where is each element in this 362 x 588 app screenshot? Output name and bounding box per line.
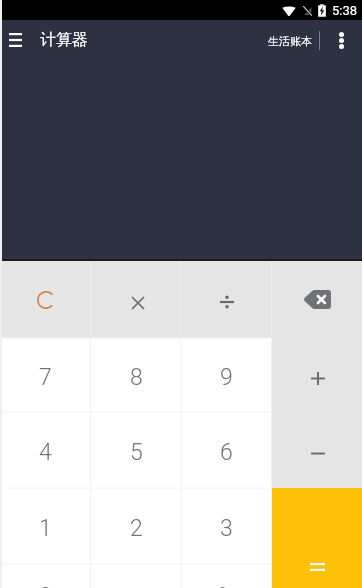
button[interactable]: More options	[321, 20, 362, 60]
staticText: 3	[220, 515, 233, 542]
button[interactable]: 0	[0, 564, 91, 588]
button[interactable]: 7	[0, 338, 91, 412]
button[interactable]: 生活账本	[258, 25, 320, 55]
button[interactable]: Plus	[272, 338, 362, 412]
button[interactable]: Backspace	[272, 261, 362, 338]
staticText: 9	[220, 364, 233, 391]
staticText: 5	[130, 439, 143, 466]
staticText: 计算器	[40, 30, 88, 50]
button[interactable]: 6	[181, 412, 272, 488]
button[interactable]: 1	[0, 488, 91, 564]
staticText: 生活账本	[268, 34, 312, 48]
button[interactable]: 8	[91, 338, 182, 412]
button[interactable]: Clear	[0, 261, 91, 338]
staticText: 5:38	[332, 3, 358, 18]
button[interactable]: 4	[0, 412, 91, 488]
staticText: 7	[39, 364, 52, 391]
button[interactable]: 9	[181, 338, 272, 412]
button[interactable]: 5	[91, 412, 182, 488]
button[interactable]: Navigation menu	[0, 20, 31, 60]
staticText: 8	[130, 364, 143, 391]
button[interactable]: Divide	[181, 261, 272, 338]
button[interactable]: 3	[181, 488, 272, 564]
staticText: 0	[39, 583, 52, 588]
button[interactable]: Minus	[272, 412, 362, 488]
button[interactable]: 2	[91, 488, 182, 564]
button[interactable]: Equals	[272, 488, 362, 588]
staticText: %	[218, 583, 236, 588]
staticText: 1	[39, 515, 52, 542]
button[interactable]: Multiply	[91, 261, 182, 338]
button[interactable]: %	[181, 564, 272, 588]
staticText: 2	[130, 515, 143, 542]
staticText: 4	[39, 439, 52, 466]
staticText: 6	[220, 439, 233, 466]
